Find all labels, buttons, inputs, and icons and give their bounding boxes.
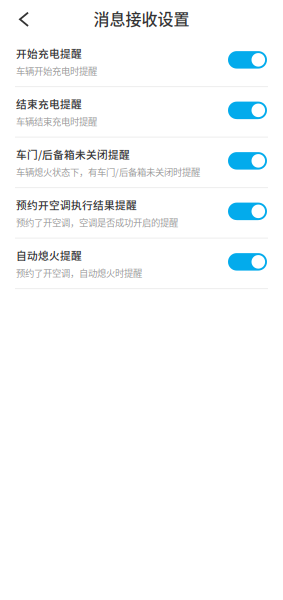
staticText: 消息接收设置 <box>93 7 189 30</box>
button[interactable]: 自动熄火提醒 <box>228 253 267 274</box>
button[interactable]: 结束充电提醒 <box>228 102 267 122</box>
button[interactable]: Back <box>4 0 44 36</box>
staticText: 自动熄火提醒 <box>16 247 82 263</box>
button[interactable]: 开始充电提醒 <box>228 51 267 72</box>
staticText: 预约了开空调，自动熄火时提醒 <box>16 266 142 279</box>
button[interactable]: 车门/后备箱未关闭提醒 <box>228 152 267 173</box>
button[interactable]: 结束充电提醒 <box>0 87 283 137</box>
staticText: 开始充电提醒 <box>16 45 82 61</box>
button[interactable]: 车门/后备箱未关闭提醒 <box>0 138 283 187</box>
button[interactable]: 预约开空调执行结果提醒 <box>0 188 283 238</box>
staticText: 车辆结束充电时提醒 <box>16 114 97 128</box>
button[interactable]: 自动熄火提醒 <box>0 239 283 288</box>
staticText: 预约开空调执行结果提醒 <box>16 197 137 212</box>
staticText: 预约了开空调，空调是否成功开启的提醒 <box>16 215 178 229</box>
button[interactable]: 开始充电提醒 <box>0 37 283 86</box>
staticText: 车门/后备箱未关闭提醒 <box>16 146 130 162</box>
staticText: 车辆开始充电时提醒 <box>16 64 97 77</box>
staticText: 结束充电提醒 <box>16 96 82 111</box>
staticText: 车辆熄火状态下，有车门/后备箱未关闭时提醒 <box>16 165 200 178</box>
button[interactable]: 预约开空调执行结果提醒 <box>228 203 267 223</box>
